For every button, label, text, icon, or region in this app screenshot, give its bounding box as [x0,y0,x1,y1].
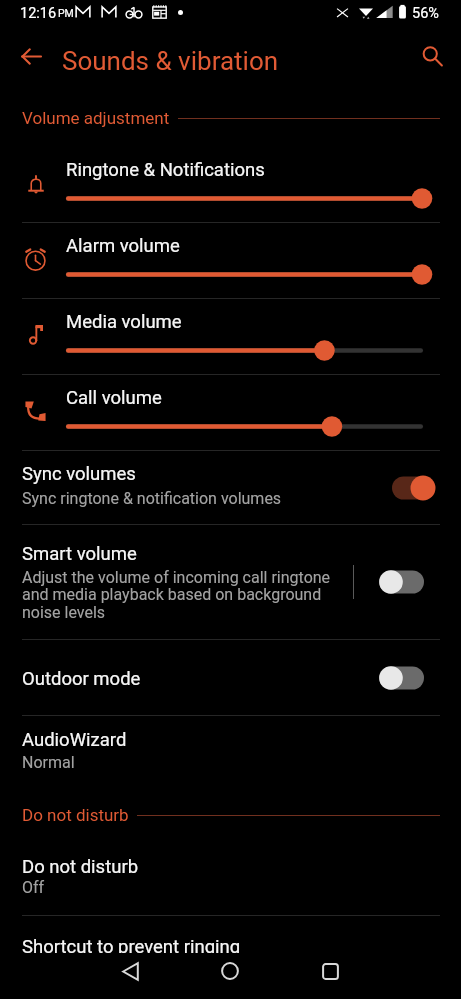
button[interactable]: Ringtone & Notifications [0,147,461,222]
staticText: AudioWizard [22,729,127,751]
staticText: 12:16 [20,5,57,22]
staticText: Volume adjustment [22,108,170,128]
button[interactable]: Sync volumes [0,451,461,524]
button[interactable]: Back [106,953,154,999]
button[interactable]: Call volume [0,375,461,450]
button[interactable]: AudioWizard [0,716,461,790]
button[interactable]: Search [412,36,451,75]
button[interactable]: Sync volumes [379,472,435,504]
button[interactable]: Do not disturb [0,856,461,915]
staticText: Adjust the volume of incoming call ringt… [22,568,358,622]
staticText: Alarm volume [66,235,180,257]
staticText: Sounds & vibration [62,46,279,76]
button[interactable]: Alarm volume [0,223,461,298]
staticText: Smart volume [22,543,137,565]
staticText: Do not disturb [22,856,139,878]
button[interactable]: Smart volume [0,525,461,639]
button[interactable]: Smart volume [379,566,435,598]
staticText: 56% [412,5,439,22]
staticText: Media volume [66,311,182,333]
staticText: Do not disturb [22,805,129,825]
button[interactable]: Home [206,953,254,999]
staticText: Outdoor mode [22,668,141,690]
button[interactable]: Shortcut to prevent ringing [0,916,461,953]
staticText: Shortcut to prevent ringing [22,936,241,958]
staticText: Normal [22,753,75,772]
button[interactable]: Navigate up [11,36,52,77]
staticText: PM [58,7,74,19]
button[interactable]: Recent apps [306,953,354,999]
button[interactable]: Outdoor mode [0,640,461,715]
staticText: Call volume [66,387,162,409]
staticText: Sync volumes [22,463,136,485]
staticText: Off [22,878,45,897]
button[interactable]: Outdoor mode [379,662,435,694]
staticText: Ringtone & Notifications [66,159,265,181]
staticText: Sync ringtone & notification volumes [22,489,282,508]
button[interactable]: Media volume [0,299,461,374]
